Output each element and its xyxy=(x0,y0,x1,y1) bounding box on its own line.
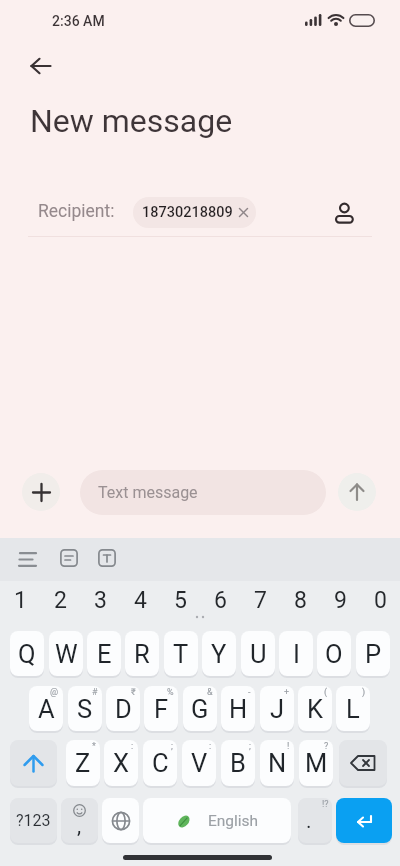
staticText: ; xyxy=(249,741,251,752)
staticText: X xyxy=(113,748,129,778)
button[interactable]: T xyxy=(164,631,198,676)
button[interactable]: U xyxy=(241,631,275,676)
staticText: - xyxy=(248,687,251,698)
staticText: V xyxy=(191,748,208,778)
staticText: P xyxy=(365,639,382,669)
button[interactable]: R xyxy=(125,631,159,676)
staticText: Y xyxy=(211,639,227,669)
staticText: # xyxy=(92,687,98,698)
staticText: Text message xyxy=(98,483,198,502)
button[interactable] xyxy=(339,740,387,786)
button[interactable]: M xyxy=(299,740,333,786)
staticText: J xyxy=(270,694,285,724)
staticText: ( xyxy=(324,687,328,698)
button[interactable]: 3 xyxy=(80,586,120,614)
staticText: L xyxy=(346,694,360,724)
button[interactable]: V xyxy=(182,740,216,786)
button[interactable]: N xyxy=(260,740,294,786)
staticText: G xyxy=(191,694,209,724)
staticText: ₹ xyxy=(131,687,136,698)
staticText: R xyxy=(134,639,150,669)
button[interactable] xyxy=(55,544,83,572)
staticText: 9 xyxy=(334,587,347,614)
staticText: E xyxy=(97,639,112,669)
button[interactable]: A xyxy=(29,686,63,731)
staticText: New message xyxy=(30,102,233,140)
button[interactable]: P xyxy=(356,631,390,676)
staticText: ! xyxy=(287,741,290,752)
button[interactable]: 5 xyxy=(160,586,200,614)
staticText: 5 xyxy=(174,587,187,614)
staticText: !? xyxy=(322,799,329,810)
button[interactable] xyxy=(102,798,139,843)
staticText: A xyxy=(38,694,55,724)
button[interactable]: 8 xyxy=(280,586,320,614)
button[interactable]: , xyxy=(61,798,98,843)
staticText: 7 xyxy=(254,587,267,614)
button[interactable]: Q xyxy=(10,631,44,676)
button[interactable]: L xyxy=(336,686,370,731)
button[interactable]: F xyxy=(144,686,178,731)
button[interactable]: Y xyxy=(202,631,236,676)
button[interactable] xyxy=(328,196,362,230)
staticText: 8 xyxy=(294,587,307,614)
button[interactable]: W xyxy=(49,631,83,676)
button[interactable] xyxy=(22,473,60,511)
button[interactable]: 7 xyxy=(240,586,280,614)
button[interactable]: 9 xyxy=(320,586,360,614)
staticText: 0 xyxy=(374,587,387,614)
button[interactable] xyxy=(336,798,392,843)
staticText: Q xyxy=(18,639,36,669)
button[interactable]: E xyxy=(87,631,121,676)
button[interactable]: B xyxy=(221,740,255,786)
button[interactable]: O xyxy=(317,631,351,676)
button[interactable]: 4 xyxy=(120,586,160,614)
staticText: 18730218809 xyxy=(142,204,233,221)
button[interactable]: D xyxy=(106,686,140,731)
button[interactable]: Z xyxy=(66,740,100,786)
button[interactable] xyxy=(14,546,42,574)
staticText: I xyxy=(293,639,300,669)
button[interactable]: 2 xyxy=(40,586,80,614)
button[interactable]: 0 xyxy=(360,586,400,614)
staticText: 2:36 AM xyxy=(52,13,105,29)
button[interactable]: G xyxy=(183,686,217,731)
staticText: S xyxy=(77,694,93,724)
button[interactable]: X xyxy=(104,740,138,786)
staticText: & xyxy=(207,687,213,698)
staticText: 4 xyxy=(134,587,147,614)
staticText: , xyxy=(77,814,82,839)
button[interactable]: 18730218809 xyxy=(133,197,256,228)
button[interactable]: . xyxy=(298,798,332,843)
button[interactable]: S xyxy=(68,686,102,731)
button[interactable] xyxy=(338,473,376,511)
button[interactable] xyxy=(10,740,57,786)
button[interactable]: H xyxy=(221,686,255,731)
staticText: H xyxy=(229,694,248,724)
button[interactable]: ?123 xyxy=(10,798,57,843)
staticText: Recipient: xyxy=(38,201,115,222)
button[interactable] xyxy=(22,50,60,88)
button[interactable]: C xyxy=(143,740,177,786)
staticText: W xyxy=(55,639,78,669)
staticText: : xyxy=(209,741,212,752)
button[interactable]: 6 xyxy=(200,586,240,614)
button[interactable]: 1 xyxy=(0,586,40,614)
button[interactable]: Text message xyxy=(80,470,326,515)
staticText: English xyxy=(208,812,259,830)
staticText: 2 xyxy=(54,587,67,614)
button[interactable] xyxy=(93,544,121,572)
button[interactable]: J xyxy=(260,686,294,731)
staticText: 6 xyxy=(214,587,227,614)
staticText: 1 xyxy=(14,587,27,614)
button[interactable]: English xyxy=(143,798,291,843)
staticText: 3 xyxy=(94,587,107,614)
staticText: N xyxy=(268,748,287,778)
staticText: U xyxy=(250,639,267,669)
button[interactable]: I xyxy=(279,631,313,676)
staticText: B xyxy=(230,748,246,778)
staticText: M xyxy=(305,748,328,778)
staticText: ) xyxy=(362,687,366,698)
staticText: ? xyxy=(324,741,329,752)
button[interactable]: K xyxy=(298,686,332,731)
